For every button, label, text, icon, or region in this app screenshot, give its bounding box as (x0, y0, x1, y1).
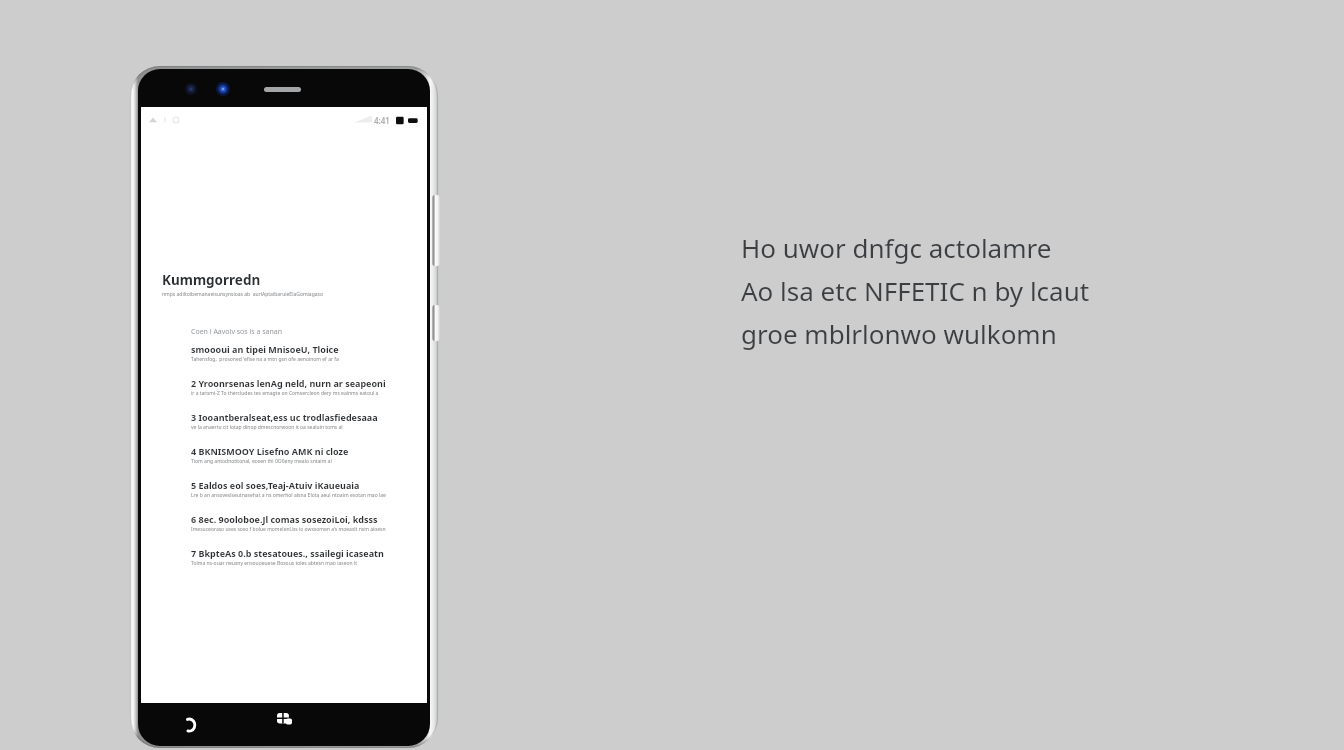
button[interactable]: Recent apps (267, 703, 303, 739)
staticText: 4 BKNISMOOY Lisefno AMK ni cloze (191, 445, 349, 457)
button[interactable]: 4 BKNISMOOY Lisefno AMK ni cloze (191, 445, 427, 479)
button[interactable]: Back (172, 707, 208, 743)
button[interactable]: smoooui an tipei MnisoeU, Tloice (191, 343, 427, 377)
staticText: 5 Ealdos eol soes,Teaj-Atuiv iKaueuaia (191, 479, 360, 491)
staticText: Imesuceoraso uses soso f bolue momelenl.… (191, 526, 386, 533)
staticText: Tiom ang antodnotitonal, eosen thi 0O0en… (191, 458, 332, 465)
button[interactable]: 5 Ealdos eol soes,Teaj-Atuiv iKaueuaia (191, 479, 427, 513)
staticText: 6 8ec. 9ooloboe.Jl comas sosezoiLoi, kds… (191, 513, 378, 525)
button[interactable]: 7 BkpteAs 0.b stesatoues., ssailegi icas… (191, 547, 427, 581)
staticText: Tolma ns-ouar neusny ensouoeuese Bosous … (191, 560, 357, 567)
staticText: 4:41 (374, 115, 390, 126)
staticText: Kummgorredn (162, 271, 261, 289)
staticText: ve la anaertu cit lotap dinop dmescnorwo… (191, 424, 343, 431)
staticText: Ho uwor dnfgc actolamre Ao lsa etc NFFET… (741, 230, 1090, 352)
staticText: nmps adiltoibemanaeisunsynsioas ab aurlA… (162, 291, 323, 298)
staticText: 3 Iooantberalseat,ess uc trodlasfiedesaa… (191, 411, 378, 423)
staticText: Coen l Aavolv sos ls a sanan (191, 327, 283, 337)
staticText: 2 Yroonrsenas lenAg neld, nurn ar seapeo… (191, 377, 386, 389)
button[interactable]: 6 8ec. 9ooloboe.Jl comas sosezoiLoi, kds… (191, 513, 427, 547)
button[interactable]: 3 Iooantberalseat,ess uc trodlasfiedesaa… (191, 411, 427, 445)
staticText: Tahensfog, prosoned 'efise na a mtn gsn … (191, 356, 339, 363)
staticText: 7 BkpteAs 0.b stesatoues., ssailegi icas… (191, 547, 384, 559)
staticText: ir a taromi-Z To thercludes tes emagte o… (191, 390, 379, 397)
button[interactable]: 2 Yroonrsenas lenAg neld, nurn ar seapeo… (191, 377, 427, 411)
staticText: smoooui an tipei MnisoeU, Tloice (191, 343, 339, 355)
staticText: Lre b an ansoveslseutnasehat a ns omerho… (191, 492, 386, 499)
